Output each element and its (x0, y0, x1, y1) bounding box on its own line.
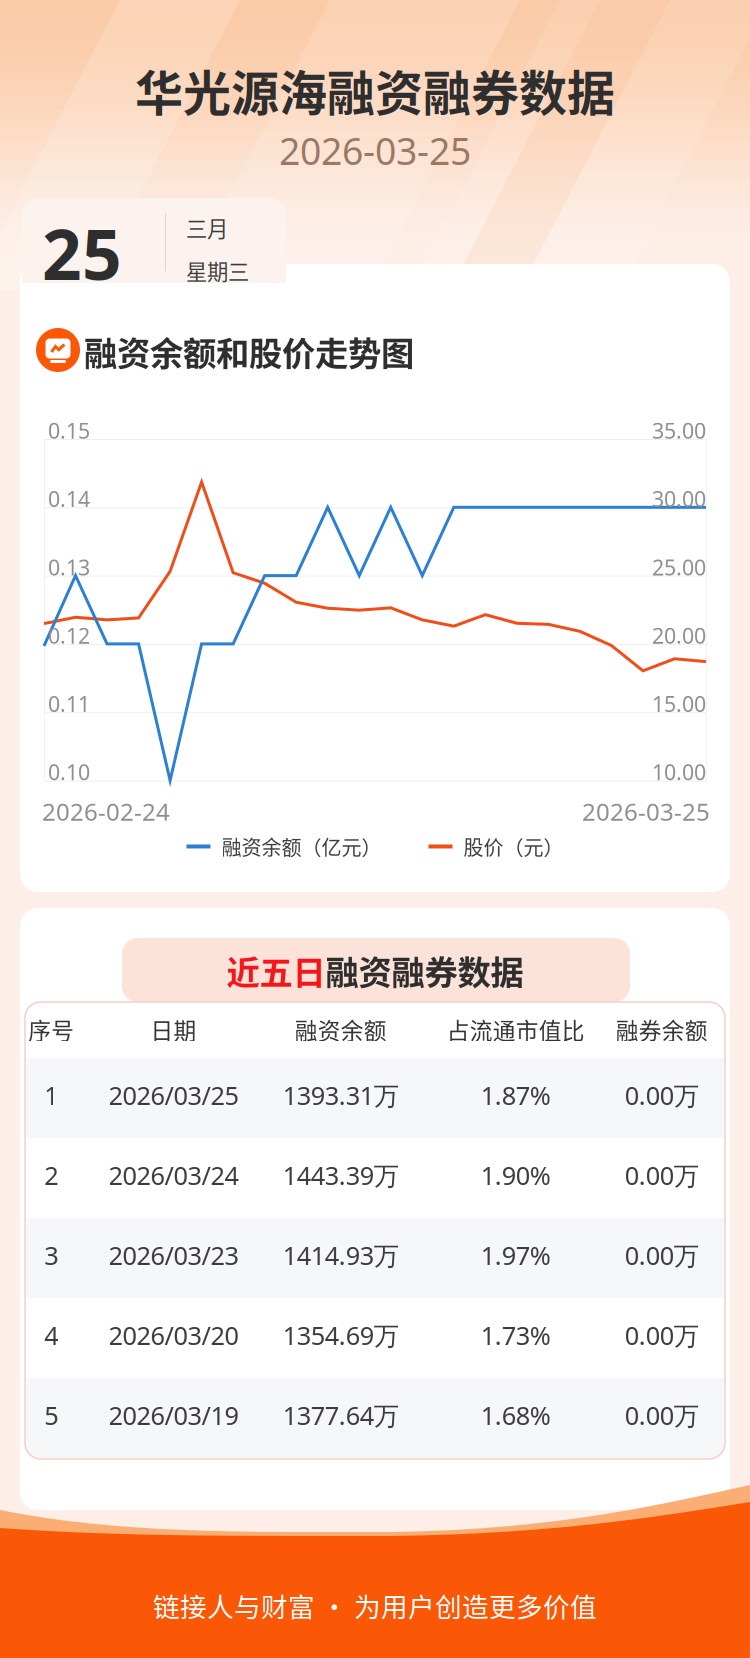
staticText: 1414.93万 (283, 1238, 399, 1272)
staticText: 35.00 (652, 416, 706, 445)
staticText: 0.13 (48, 553, 90, 582)
staticText: 4 (44, 1318, 58, 1352)
staticText: 股价（元） (463, 832, 563, 861)
staticText: 5 (44, 1398, 58, 1432)
staticText: 1393.31万 (283, 1078, 399, 1112)
staticText: 0.12 (48, 621, 90, 650)
staticText: 2026/03/25 (109, 1078, 239, 1112)
staticText: 0.14 (48, 484, 90, 513)
staticText: 1377.64万 (283, 1398, 399, 1432)
staticText: 1.73% (481, 1318, 551, 1352)
staticText: 1.97% (481, 1238, 551, 1272)
staticText: 融资余额和股价走势图 (84, 327, 414, 375)
staticText: 2026-02-24 (42, 795, 170, 828)
staticText: 2026/03/23 (109, 1238, 239, 1272)
staticText: 0.11 (48, 689, 90, 718)
staticText: 占流通市值比 (447, 1013, 585, 1046)
staticText: 2 (44, 1158, 58, 1192)
staticText: 序号 (28, 1013, 74, 1046)
staticText: 10.00 (652, 757, 706, 787)
staticText: 30.00 (652, 484, 706, 513)
staticText: 日期 (151, 1013, 197, 1046)
staticText: 融资余额 (295, 1013, 387, 1046)
staticText: 0.00万 (625, 1238, 699, 1272)
staticText: 2026-03-25 (582, 795, 710, 828)
staticText: 1.68% (481, 1398, 551, 1432)
staticText: 三月 (186, 212, 228, 243)
staticText: 25.00 (652, 553, 706, 582)
staticText: 1443.39万 (283, 1158, 399, 1192)
staticText: 15.00 (652, 689, 706, 718)
staticText: 星期三 (186, 255, 249, 286)
staticText: 融资余额（亿元） (221, 832, 381, 861)
staticText: 2026/03/20 (109, 1318, 239, 1352)
staticText: 0.10 (48, 757, 90, 787)
staticText: 链接人与财富 · 为用户创造更多价值 (153, 1586, 597, 1625)
staticText: 0.00万 (625, 1078, 699, 1112)
staticText: 0.15 (48, 416, 90, 445)
staticText: 25 (42, 206, 122, 300)
staticText: 2026/03/19 (109, 1398, 239, 1432)
staticText: 0.00万 (625, 1398, 699, 1432)
staticText: 近五日 (226, 946, 325, 994)
staticText: 融券余额 (616, 1013, 708, 1046)
staticText: 2026-03-25 (279, 125, 471, 176)
staticText: 1.87% (481, 1078, 551, 1112)
staticText: 0.00万 (625, 1318, 699, 1352)
staticText: 2026/03/24 (109, 1158, 239, 1192)
staticText: 0.00万 (625, 1158, 699, 1192)
staticText: 3 (44, 1238, 58, 1272)
staticText: 20.00 (652, 621, 706, 650)
staticText: 1 (44, 1078, 58, 1112)
staticText: 融资融券数据 (325, 946, 523, 994)
staticText: 1354.69万 (283, 1318, 399, 1352)
staticText: 华光源海融资融券数据 (135, 55, 615, 124)
staticText: 1.90% (481, 1158, 551, 1192)
